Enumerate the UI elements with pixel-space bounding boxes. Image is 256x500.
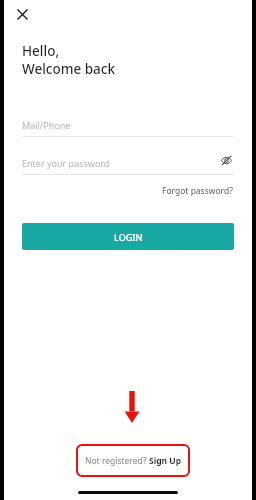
staticText: Forgot password? (162, 185, 233, 197)
button[interactable]: Mail/Phone (22, 112, 234, 137)
button[interactable]: Forgot password? (161, 183, 234, 199)
button[interactable]: Not registered? (76, 444, 190, 477)
button[interactable]: Enter your password (22, 150, 234, 175)
staticText: LOGIN (114, 231, 143, 243)
button[interactable]: LOGIN (22, 223, 234, 250)
staticText: Mail/Phone (22, 119, 71, 131)
staticText: Hello, (22, 42, 60, 60)
staticText: Welcome back (22, 60, 116, 78)
button[interactable]: Show password (215, 149, 237, 171)
button[interactable]: Close (10, 2, 34, 26)
staticText: Enter your password (22, 157, 110, 169)
staticText: Sign Up (149, 455, 182, 467)
staticText: Not registered? (85, 455, 149, 467)
